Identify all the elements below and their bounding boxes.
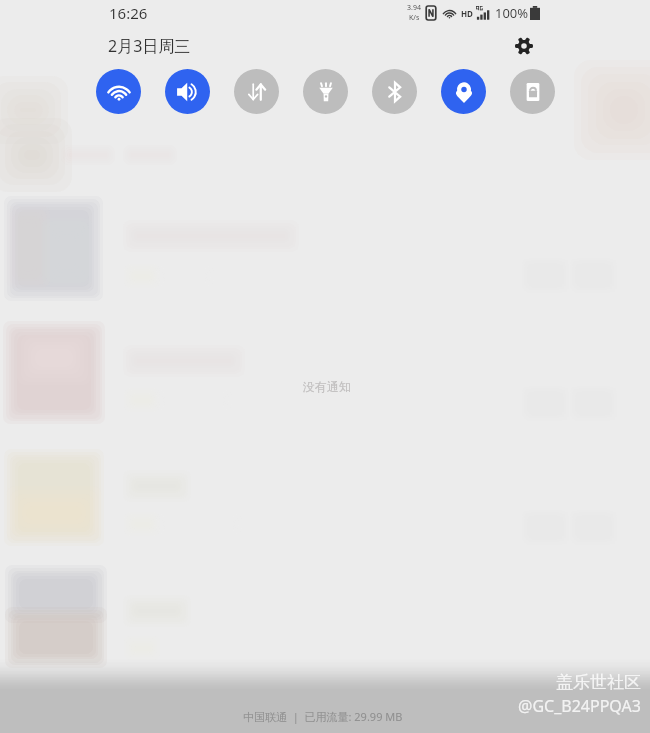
- staticText: @GC_B24PPQA3: [518, 695, 641, 717]
- staticText: 100%: [495, 4, 529, 22]
- staticText: HD: [461, 8, 473, 19]
- button[interactable]: Wi-Fi: [96, 69, 141, 114]
- staticText: K/s: [409, 13, 420, 23]
- staticText: 3.94: [407, 3, 421, 13]
- staticText: 盖乐世社区: [556, 672, 641, 693]
- staticText: 2月3日周三: [108, 35, 191, 57]
- button[interactable]: Bluetooth: [372, 69, 417, 114]
- button[interactable]: Sound: [165, 69, 210, 114]
- staticText: 中国联通 | 已用流量: 29.99 MB: [243, 709, 403, 724]
- staticText: 没有通知: [303, 379, 351, 394]
- button[interactable]: Screen lock: [510, 69, 555, 114]
- button[interactable]: Flashlight: [303, 69, 348, 114]
- button[interactable]: Mobile data: [234, 69, 279, 114]
- button[interactable]: Settings: [508, 30, 540, 62]
- button[interactable]: Location: [441, 69, 486, 114]
- staticText: 16:26: [109, 3, 148, 23]
